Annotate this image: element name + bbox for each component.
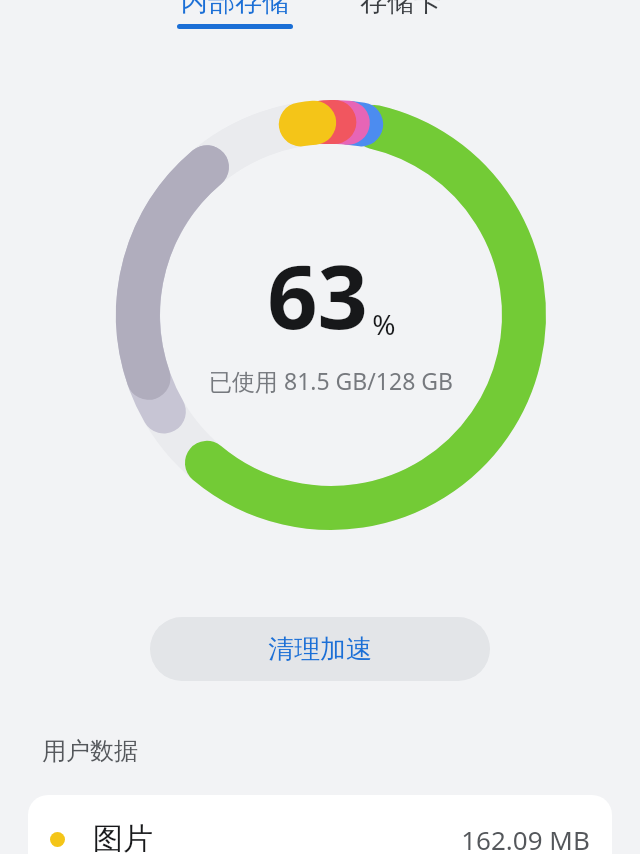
staticText: 存储卡 [360, 0, 441, 19]
button[interactable]: 图片 [28, 795, 612, 854]
button[interactable]: 存储卡 [338, 0, 462, 20]
staticText: % [372, 305, 396, 343]
staticText: 已使用 81.5 GB/128 GB [209, 365, 453, 396]
staticText: 用户数据 [42, 736, 138, 766]
staticText: 63 [267, 235, 368, 355]
staticText: 图片 [93, 820, 153, 854]
staticText: 内部存储 [181, 0, 289, 19]
staticText: 162.09 MB [461, 822, 590, 854]
button[interactable]: 内部存储 [168, 0, 302, 29]
staticText: 清理加速 [268, 633, 372, 666]
other: Storage usage 63 percent [106, 90, 556, 540]
button[interactable]: 清理加速 [150, 617, 490, 681]
